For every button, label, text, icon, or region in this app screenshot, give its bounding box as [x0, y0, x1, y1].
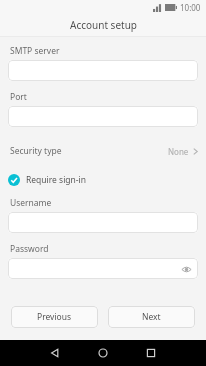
staticText: Account setup: [70, 18, 137, 32]
button[interactable]: [8, 212, 198, 233]
button[interactable]: [8, 106, 198, 127]
staticText: Port: [10, 91, 27, 103]
staticText: Require sign-in: [26, 174, 87, 186]
button[interactable]: Show password: [8, 258, 198, 279]
staticText: Security type: [10, 145, 62, 157]
button[interactable]: Require sign-in: [0, 169, 206, 191]
staticText: 10:00: [180, 2, 201, 13]
button[interactable]: Next: [108, 306, 195, 328]
staticText: Previous: [37, 311, 72, 323]
button[interactable]: Security type: [0, 141, 206, 161]
staticText: Username: [10, 197, 52, 209]
staticText: Next: [142, 311, 161, 323]
button[interactable]: Show password: [180, 263, 192, 275]
button[interactable]: Back: [31, 340, 79, 366]
staticText: None: [168, 146, 189, 157]
button[interactable]: Home: [79, 340, 127, 366]
button[interactable]: Previous: [11, 306, 98, 328]
staticText: SMTP server: [10, 45, 60, 57]
staticText: Password: [10, 243, 49, 255]
button[interactable]: Recent apps: [127, 340, 175, 366]
button[interactable]: [8, 60, 198, 81]
